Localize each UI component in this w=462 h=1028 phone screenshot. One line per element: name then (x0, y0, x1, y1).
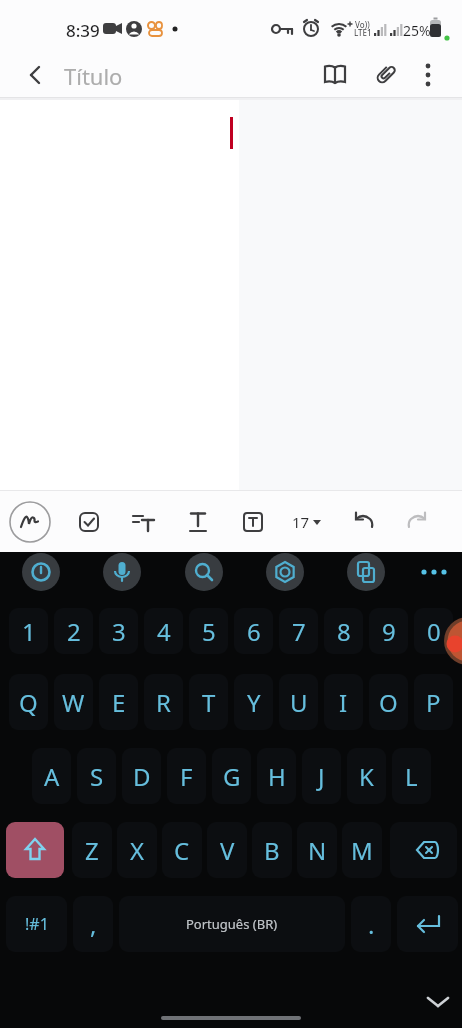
button[interactable]: 4 (144, 608, 183, 654)
staticText: Vo)) (355, 19, 370, 30)
button[interactable]: A (32, 748, 71, 804)
staticText: 6 (247, 615, 261, 648)
button[interactable]: K (347, 748, 386, 804)
staticText: H (268, 760, 286, 793)
button[interactable]: 8 (324, 608, 363, 654)
staticText: !#1 (25, 913, 49, 935)
staticText: 7 (292, 615, 306, 648)
button[interactable]: G (212, 748, 251, 804)
button[interactable]: , (73, 896, 113, 952)
button[interactable]: 9 (369, 608, 408, 654)
button[interactable] (22, 553, 60, 591)
button[interactable]: C (162, 822, 202, 878)
staticText: 17 (292, 512, 310, 532)
button[interactable]: Português (BR) (119, 896, 345, 952)
staticText: LTE1 (354, 27, 372, 38)
button[interactable]: E (99, 674, 138, 730)
button[interactable]: W (54, 674, 93, 730)
staticText: Z (85, 834, 99, 867)
button[interactable]: N (297, 822, 337, 878)
staticText: Q (19, 686, 38, 719)
button[interactable]: T (189, 674, 228, 730)
button[interactable] (6, 822, 64, 878)
staticText: L (405, 760, 418, 793)
button[interactable] (424, 990, 452, 1014)
staticText: 2 (67, 615, 81, 648)
staticText: Título (64, 61, 123, 91)
button[interactable] (236, 505, 270, 539)
staticText: E (112, 686, 126, 719)
staticText: Y (247, 686, 261, 719)
staticText: P (426, 686, 441, 719)
staticText: 1 (22, 615, 36, 648)
staticText: O (379, 686, 398, 719)
staticText: U (290, 686, 308, 719)
button[interactable]: M (342, 822, 382, 878)
staticText: X (130, 834, 145, 867)
staticText: M (351, 834, 373, 867)
staticText: 3 (112, 615, 126, 648)
button[interactable]: 5 (189, 608, 228, 654)
button[interactable]: 2 (54, 608, 93, 654)
button[interactable] (126, 505, 160, 539)
staticText: A (44, 760, 60, 793)
button[interactable] (266, 553, 304, 591)
button[interactable] (8, 500, 52, 544)
staticText: J (318, 760, 325, 793)
button[interactable]: S (77, 748, 116, 804)
button[interactable] (390, 822, 457, 878)
button[interactable]: V (207, 822, 247, 878)
staticText: 5 (202, 615, 216, 648)
staticText: W (62, 686, 85, 719)
button[interactable]: H (257, 748, 296, 804)
button[interactable]: O (369, 674, 408, 730)
button[interactable] (72, 505, 106, 539)
button[interactable]: D (122, 748, 161, 804)
staticText: R (156, 686, 171, 719)
staticText: I (339, 686, 348, 719)
button[interactable]: . (351, 896, 391, 952)
button[interactable] (185, 553, 223, 591)
staticText: Português (BR) (186, 915, 278, 933)
button[interactable]: 0 (414, 608, 453, 654)
button[interactable]: 1 (9, 608, 48, 654)
button[interactable] (181, 505, 215, 539)
button[interactable] (397, 896, 458, 952)
staticText: S (90, 760, 104, 793)
staticText: N (308, 834, 327, 867)
staticText: 0 (427, 615, 441, 648)
staticText: 25% (403, 21, 431, 40)
button[interactable]: I (324, 674, 363, 730)
button[interactable] (415, 553, 453, 591)
button[interactable]: Y (234, 674, 273, 730)
staticText: V (220, 834, 235, 867)
button[interactable]: X (117, 822, 157, 878)
staticText: D (133, 760, 151, 793)
button[interactable] (347, 553, 385, 591)
button[interactable]: R (144, 674, 183, 730)
staticText: . (368, 908, 375, 941)
button[interactable]: P (414, 674, 453, 730)
staticText: 8:39 (66, 19, 100, 42)
button[interactable] (411, 58, 445, 92)
button[interactable]: B (252, 822, 292, 878)
button[interactable] (368, 58, 402, 92)
button[interactable]: J (302, 748, 341, 804)
button[interactable]: !#1 (6, 896, 67, 952)
button[interactable]: Q (9, 674, 48, 730)
button[interactable] (18, 58, 52, 92)
staticText: K (359, 760, 374, 793)
staticText: 9 (382, 615, 396, 648)
button[interactable]: Z (72, 822, 112, 878)
button[interactable]: 17 (286, 505, 330, 539)
button[interactable]: U (279, 674, 318, 730)
button[interactable]: L (392, 748, 431, 804)
button[interactable]: F (167, 748, 206, 804)
button[interactable]: 3 (99, 608, 138, 654)
button[interactable]: 7 (279, 608, 318, 654)
button[interactable] (318, 58, 352, 92)
button[interactable] (401, 505, 435, 539)
button[interactable] (103, 553, 141, 591)
button[interactable] (346, 505, 380, 539)
button[interactable]: 6 (234, 608, 273, 654)
